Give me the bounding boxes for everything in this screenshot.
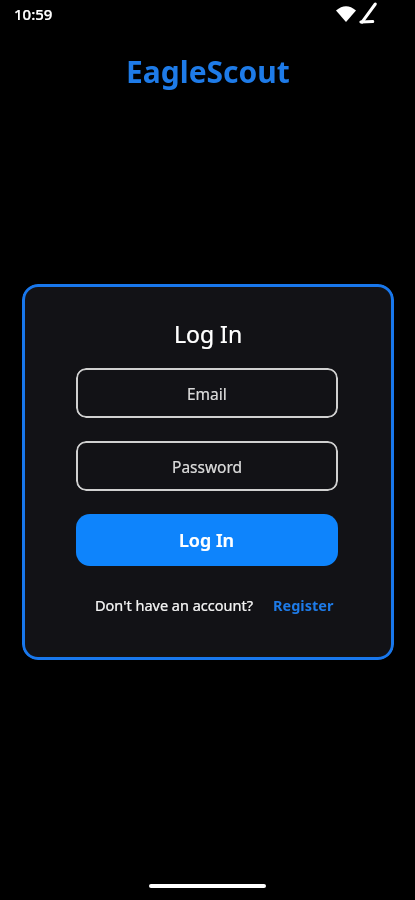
- button[interactable]: Register: [273, 595, 334, 615]
- staticText: Don't have an account?: [95, 595, 253, 615]
- button[interactable]: Password: [76, 441, 338, 491]
- staticText: Log In: [174, 318, 243, 349]
- staticText: Email: [187, 383, 227, 404]
- staticText: Password: [172, 456, 243, 477]
- button[interactable]: Email: [76, 368, 338, 418]
- staticText: Log In: [179, 528, 235, 553]
- button[interactable]: Log In: [76, 514, 338, 566]
- staticText: EagleScout: [126, 51, 290, 92]
- staticText: 10:59: [14, 4, 53, 24]
